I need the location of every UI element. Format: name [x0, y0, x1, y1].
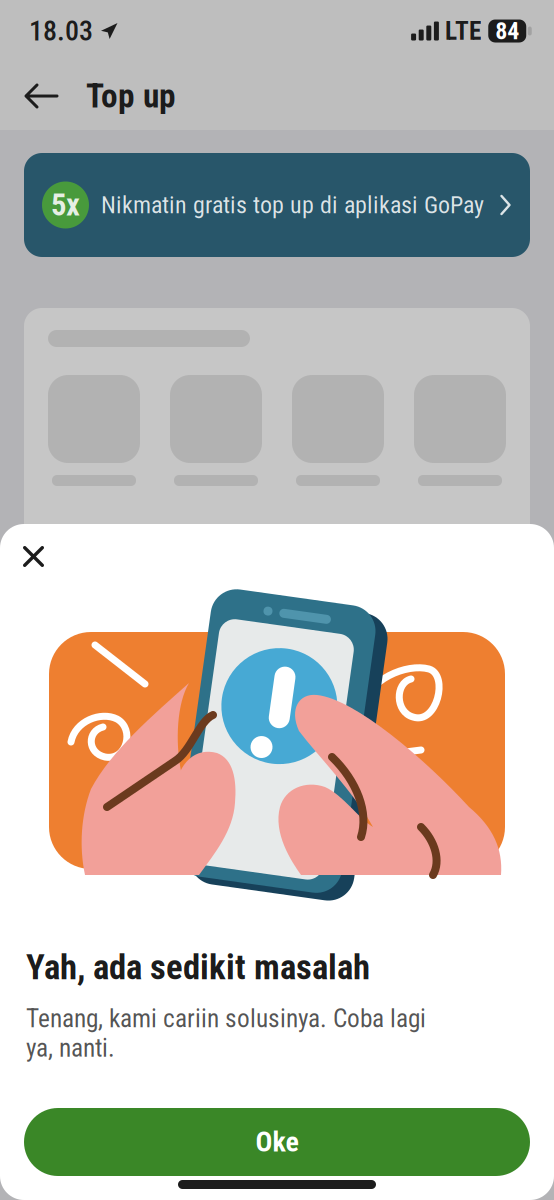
- button[interactable]: Close: [10, 533, 57, 580]
- staticText: Nikmatin gratis top up di aplikasi GoPay: [101, 191, 484, 219]
- staticText: 84: [495, 17, 519, 45]
- staticText: Yah, ada sedikit masalah: [26, 947, 370, 988]
- button[interactable]: Back: [8, 66, 74, 125]
- staticText: 18.03: [29, 15, 93, 47]
- staticText: LTE: [445, 16, 481, 46]
- button[interactable]: Oke: [24, 1108, 530, 1176]
- staticText: Oke: [255, 1126, 298, 1158]
- staticText: Tenang, kami cariin solusinya. Coba lagi…: [26, 1004, 426, 1063]
- staticText: 5x: [51, 187, 80, 223]
- staticText: Top up: [86, 76, 176, 116]
- button[interactable]: 5x: [24, 153, 530, 257]
